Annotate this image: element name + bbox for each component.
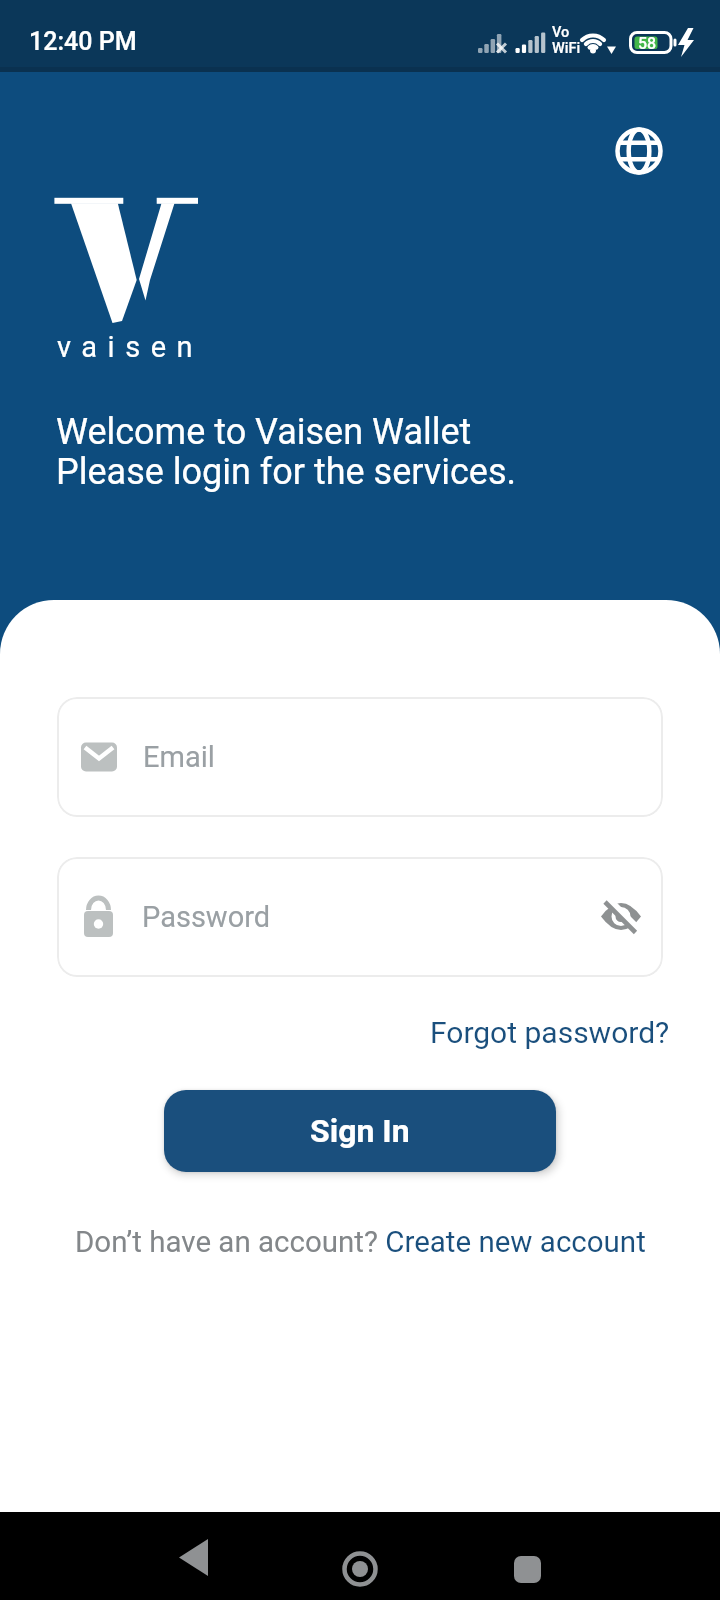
button[interactable]: [616, 128, 662, 174]
staticText: vaisen: [57, 330, 204, 364]
staticText: Sign In: [310, 1112, 410, 1150]
staticText: Email: [143, 740, 215, 774]
button[interactable]: Forgot password?: [430, 1015, 670, 1050]
button[interactable]: [600, 895, 644, 939]
staticText: Password: [142, 900, 271, 934]
staticText: 58: [638, 34, 657, 53]
staticText: Vo WiFi: [552, 24, 581, 56]
button[interactable]: Sign In: [164, 1090, 556, 1172]
button[interactable]: [342, 1551, 378, 1587]
staticText: 12:40 PM: [29, 27, 137, 56]
button[interactable]: [179, 1539, 208, 1576]
button[interactable]: Don’t have an account? Create new accoun…: [75, 1225, 646, 1260]
button[interactable]: Password: [57, 857, 663, 977]
staticText: Welcome to Vaisen Wallet Please login fo…: [56, 411, 516, 493]
button[interactable]: [514, 1556, 541, 1583]
button[interactable]: Email: [57, 697, 663, 817]
